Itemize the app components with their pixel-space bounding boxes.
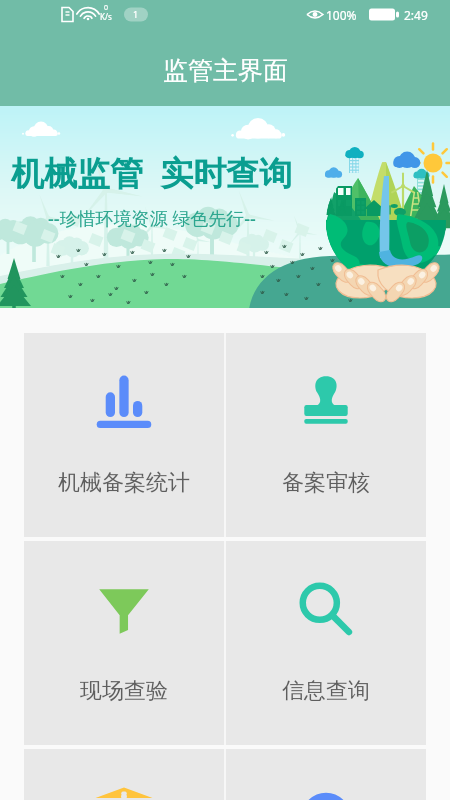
staticText: 机械备案统计 xyxy=(58,469,190,497)
staticText: 0 xyxy=(104,3,109,13)
staticText: 2:49 xyxy=(404,7,428,23)
button[interactable]: 信息查询 xyxy=(226,541,426,745)
staticText: 信息查询 xyxy=(282,677,370,705)
staticText: --珍惜环境资源 绿色先行-- xyxy=(48,206,256,231)
staticText: 现场查验 xyxy=(80,677,168,705)
staticText: 1 xyxy=(133,8,139,20)
staticText: 监管主界面 xyxy=(163,55,288,86)
staticText: 备案审核 xyxy=(282,469,370,497)
staticText: K/s xyxy=(100,11,112,22)
button[interactable]: 现场查验 xyxy=(24,541,224,745)
staticText: 100% xyxy=(326,7,357,23)
button[interactable]: 机械备案统计 xyxy=(24,333,224,537)
button[interactable]: 信息公开 xyxy=(226,749,426,800)
staticText: 机械监管 实时查询 xyxy=(11,150,293,195)
button[interactable]: 预警信息 xyxy=(24,749,224,800)
button[interactable]: 备案审核 xyxy=(226,333,426,537)
